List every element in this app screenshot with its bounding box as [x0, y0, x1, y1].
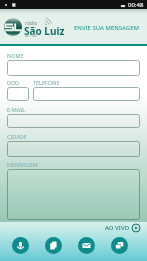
staticText: AO VIVO	[105, 224, 130, 232]
button[interactable]: Chat	[111, 237, 128, 254]
staticText: MENSAGEM	[7, 161, 38, 168]
staticText: AM 1080	[25, 34, 37, 38]
button[interactable]: News	[45, 237, 62, 254]
staticText: TELEFONE	[33, 79, 60, 86]
button[interactable]	[7, 87, 29, 101]
staticText: 00:48	[128, 1, 144, 9]
staticText: NOME	[7, 52, 24, 59]
button[interactable]: ENVIE SUA MENSAGEM	[74, 24, 139, 32]
staticText: rádio	[25, 20, 38, 27]
button[interactable]	[7, 141, 140, 157]
button[interactable]: Messages	[78, 237, 95, 254]
staticText: E-MAIL	[7, 106, 26, 113]
button[interactable]	[7, 114, 140, 128]
button[interactable]	[7, 60, 140, 76]
staticText: DDD	[7, 79, 20, 86]
button[interactable]: AO VIVO	[105, 224, 140, 232]
button[interactable]	[33, 87, 140, 101]
staticText: ENVIE SUA MENSAGEM	[74, 24, 139, 32]
staticText: CIDADE	[7, 133, 27, 140]
staticText: São Luiz	[24, 24, 65, 38]
button[interactable]	[7, 169, 140, 220]
button[interactable]: Microphone	[12, 237, 29, 254]
